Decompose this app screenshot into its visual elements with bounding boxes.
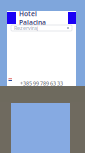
staticText: +385 99 789 63 33 — [20, 80, 63, 87]
staticText: Hotel Palacina — [19, 9, 46, 27]
staticText: Rezerviraj — [14, 24, 38, 32]
